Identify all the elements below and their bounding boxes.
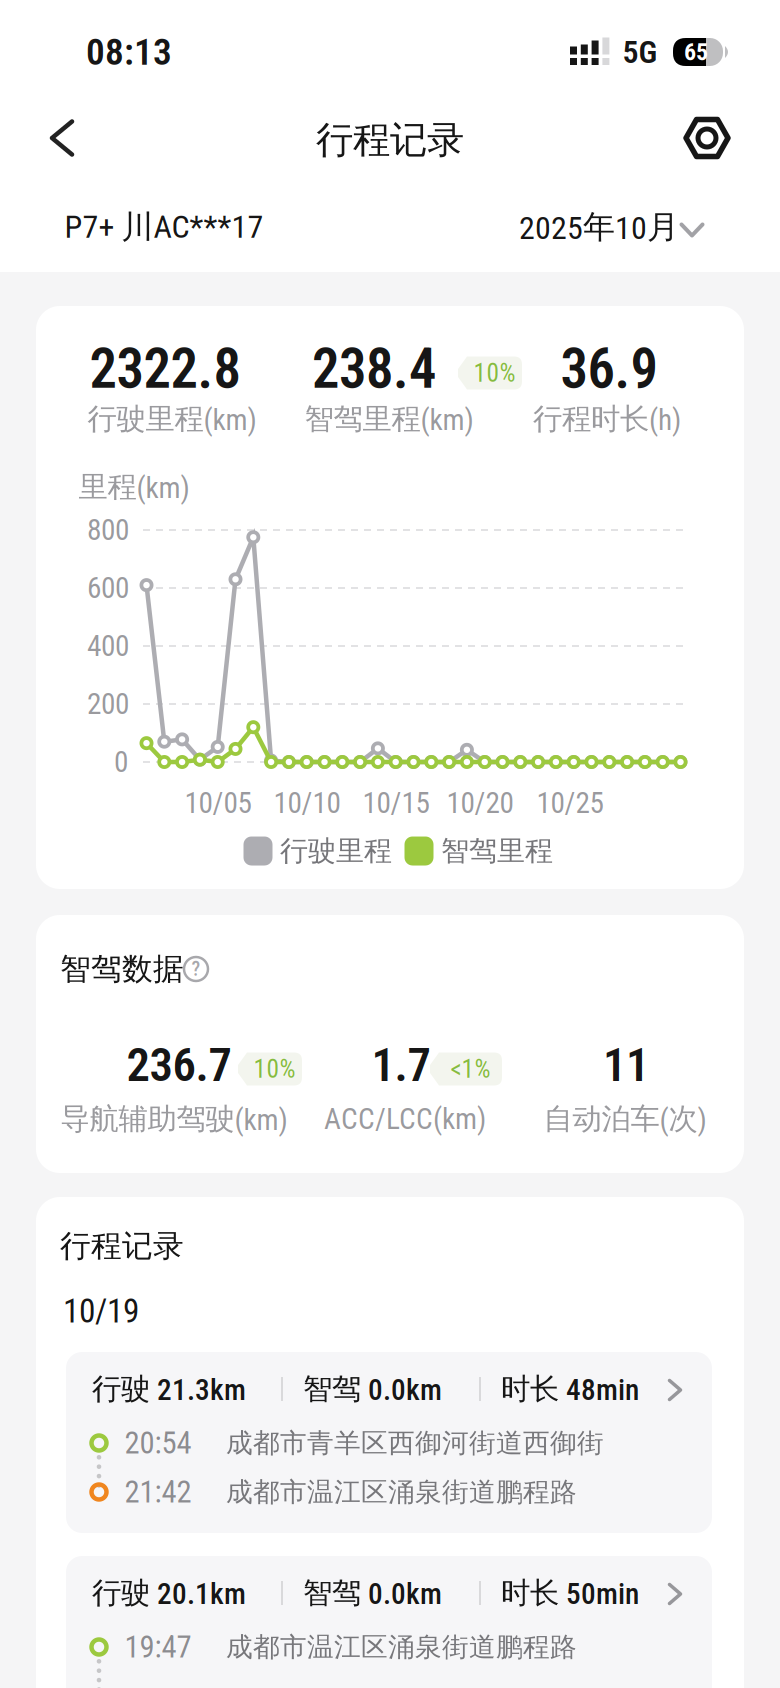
staticText: 里程(km) (78, 469, 189, 505)
staticText: 400 (87, 629, 129, 663)
staticText: 智驾数据 (60, 950, 184, 988)
staticText: 10/15 (362, 786, 429, 820)
staticText: 10% (253, 1054, 295, 1083)
staticText: 10/05 (184, 786, 251, 820)
staticText: <1% (450, 1054, 490, 1083)
button[interactable]: Back (32, 108, 92, 168)
staticText: 21:42 (124, 1474, 191, 1509)
staticText: 236.7 (126, 1038, 231, 1092)
staticText: 成都市温江区涌泉街道鹏程路 (226, 1631, 577, 1663)
staticText: 20:54 (124, 1425, 191, 1460)
staticText: 2025年10月 (519, 207, 679, 247)
staticText: 19:47 (124, 1629, 191, 1664)
staticText: 08:13 (86, 31, 172, 73)
staticText: 36.9 (560, 338, 657, 400)
staticText: 10/19 (63, 1292, 139, 1330)
staticText: 行驶里程(km) (87, 401, 256, 437)
staticText: 行驶 20.1km (92, 1575, 246, 1611)
staticText: 导航辅助驾驶(km) (60, 1101, 287, 1137)
staticText: 行驶 21.3km (92, 1371, 246, 1407)
staticText: 10/25 (536, 786, 603, 820)
staticText: 智驾 0.0km (303, 1371, 442, 1407)
staticText: 800 (87, 513, 129, 547)
staticText: 行程记录 (316, 117, 464, 163)
button[interactable]: 行驶 21.3km (66, 1352, 712, 1533)
staticText: 1.7 (371, 1038, 430, 1092)
staticText: 2322.8 (89, 338, 240, 400)
staticText: 65 (684, 38, 708, 66)
staticText: 238.4 (312, 338, 436, 400)
staticText: 200 (87, 687, 129, 721)
staticText: 0 (114, 745, 128, 779)
staticText: 行程时长(h) (533, 401, 681, 437)
staticText: 自动泊车(次) (543, 1101, 706, 1137)
staticText: 10/20 (446, 786, 513, 820)
staticText: 智驾里程 (441, 834, 553, 868)
staticText: 行程记录 (60, 1227, 184, 1265)
staticText: 10% (473, 358, 515, 387)
button[interactable]: 行驶 20.1km (66, 1556, 712, 1688)
staticText: 时长 50min (501, 1575, 639, 1611)
staticText: 10/10 (273, 786, 340, 820)
staticText: 5G (622, 34, 657, 70)
staticText: 成都市青羊区西御河街道西御街 (226, 1427, 604, 1459)
staticText: 600 (87, 571, 129, 605)
staticText: 11 (603, 1038, 649, 1092)
staticText: 行驶里程 (280, 834, 392, 868)
staticText: 成都市温江区涌泉街道鹏程路 (226, 1476, 577, 1508)
staticText: ? (191, 958, 200, 980)
button[interactable]: Settings (679, 113, 735, 163)
button[interactable]: 帮助 (182, 955, 210, 983)
button[interactable]: 2025年10月 (510, 204, 710, 252)
staticText: ACC/LCC(km) (324, 1102, 486, 1136)
staticText: 时长 48min (501, 1371, 639, 1407)
staticText: P7+ 川AC***17 (64, 207, 263, 247)
staticText: 智驾里程(km) (304, 401, 473, 437)
staticText: 智驾 0.0km (303, 1575, 442, 1611)
